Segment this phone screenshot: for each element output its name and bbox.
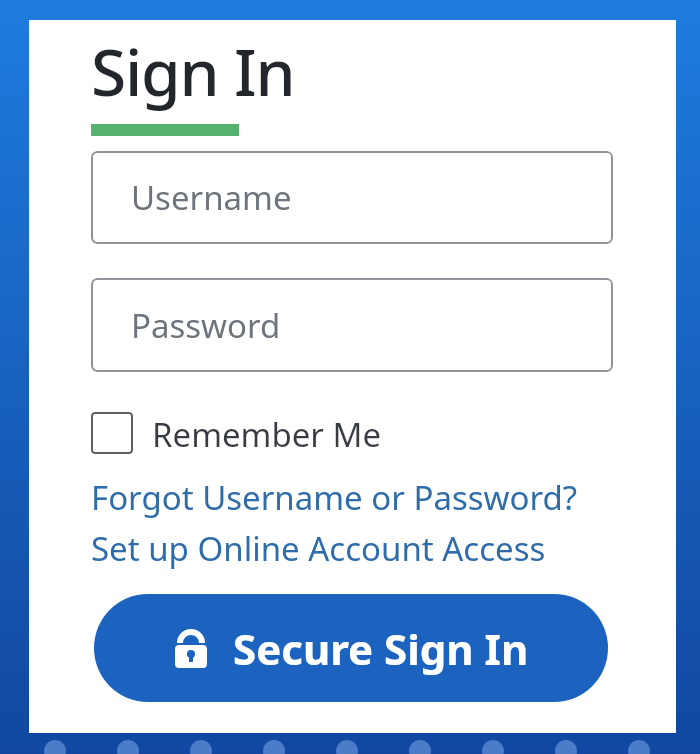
staticText: Forgot Username or Password? xyxy=(91,475,578,520)
button[interactable]: Username xyxy=(91,151,613,244)
button[interactable]: Secure Sign In xyxy=(94,594,608,702)
staticText: Remember Me xyxy=(152,412,382,454)
staticText: Sign In xyxy=(91,28,295,115)
staticText: Set up Online Account Access xyxy=(91,526,546,571)
button[interactable]: Set up Online Account Access xyxy=(91,526,546,571)
button[interactable]: Remember Me xyxy=(91,412,382,454)
button[interactable]: Forgot Username or Password? xyxy=(91,475,578,520)
staticText: Username xyxy=(131,175,292,220)
staticText: Password xyxy=(131,303,281,348)
button[interactable]: Password xyxy=(91,278,613,372)
staticText: Secure Sign In xyxy=(233,620,529,677)
